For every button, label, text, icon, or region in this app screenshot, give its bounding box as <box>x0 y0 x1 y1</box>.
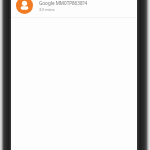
button[interactable]: Contact avatar <box>11 0 137 17</box>
staticText: Google MM0TP8638?4 <box>39 0 88 6</box>
staticText: 33 mins <box>39 7 55 13</box>
other: Contact avatar <box>16 0 33 14</box>
